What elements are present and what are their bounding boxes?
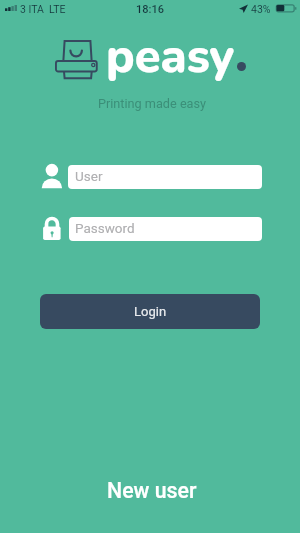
button[interactable]: Password — [69, 217, 262, 241]
staticText: Printing made easy — [2, 96, 300, 111]
other: Password — [42, 216, 62, 242]
staticText: Login — [134, 304, 167, 319]
staticText: User — [75, 168, 103, 184]
other: User — [41, 163, 63, 189]
staticText: 43% — [251, 3, 271, 15]
button[interactable]: Login — [40, 294, 260, 329]
staticText: LTE — [49, 3, 66, 15]
button[interactable]: User — [68, 165, 262, 189]
staticText: peasy — [106, 24, 235, 88]
staticText: 3 ITA — [20, 3, 44, 15]
other: Peasy printer logo — [55, 37, 98, 81]
staticText: New user — [107, 478, 197, 503]
staticText: Password — [75, 220, 135, 236]
staticText: 18:16 — [0, 3, 300, 16]
button[interactable]: New user — [2, 476, 300, 504]
